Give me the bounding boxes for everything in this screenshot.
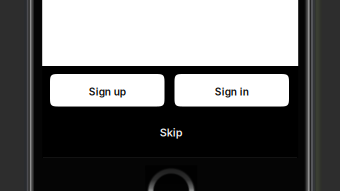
staticText: Skip bbox=[160, 126, 183, 139]
staticText: Sign up bbox=[89, 86, 126, 98]
button[interactable]: Sign up bbox=[50, 74, 164, 106]
staticText: Sign in bbox=[215, 86, 249, 98]
button[interactable]: Sign in bbox=[174, 74, 289, 106]
button[interactable]: Skip bbox=[125, 121, 215, 143]
